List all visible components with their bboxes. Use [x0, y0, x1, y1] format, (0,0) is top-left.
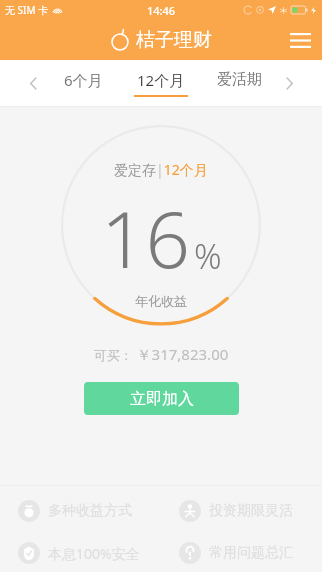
staticText: 投资期限灵活 — [209, 502, 293, 520]
button[interactable]: Previous — [18, 68, 48, 98]
staticText: 桔子理财 — [136, 28, 212, 52]
staticText: 爱活期 — [217, 70, 262, 89]
staticText: 常用问题总汇 — [209, 544, 293, 562]
staticText: 爱定存|12个月 — [114, 160, 208, 179]
staticText: 无 SIM 卡 — [5, 3, 49, 17]
button[interactable]: 本息100%安全 — [0, 542, 161, 564]
button[interactable]: 常用问题总汇 — [161, 542, 322, 564]
staticText: 可买： ￥317,823.00 — [0, 344, 322, 364]
staticText: 14:46 — [147, 3, 176, 18]
staticText: 6个月 — [64, 70, 103, 90]
staticText: 12个月 — [137, 70, 185, 90]
button[interactable]: 爱活期 — [210, 70, 268, 96]
button[interactable]: Next — [274, 68, 304, 98]
button[interactable]: 12个月 — [132, 70, 190, 97]
button[interactable]: 多种收益方式 — [0, 500, 161, 522]
button[interactable]: 立即加入 — [84, 382, 239, 415]
staticText: % — [194, 233, 222, 279]
staticText: 多种收益方式 — [48, 502, 132, 520]
staticText: 本息100%安全 — [48, 544, 140, 563]
button[interactable]: Menu — [278, 20, 322, 60]
staticText: 年化收益 — [135, 293, 187, 309]
button[interactable]: 6个月 — [54, 70, 112, 97]
staticText: 16 — [101, 185, 191, 291]
button[interactable]: 投资期限灵活 — [161, 500, 322, 522]
staticText: 立即加入 — [130, 389, 194, 409]
